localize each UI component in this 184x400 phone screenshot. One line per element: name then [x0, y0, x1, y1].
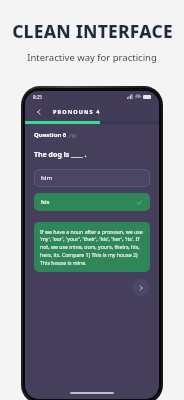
staticText: If we have a noun after a pronoun, we us…: [40, 228, 144, 266]
staticText: his: [41, 198, 50, 206]
staticText: The dog is ____ .: [34, 150, 87, 160]
staticText: CLEAN INTERFACE: [12, 19, 173, 43]
button[interactable]: If we have a noun after a pronoun, we us…: [34, 222, 150, 272]
staticText: PRONOUNS 4: [53, 108, 101, 115]
staticText: /10: [69, 133, 76, 139]
staticText: 8:25: [33, 94, 42, 100]
staticText: him: [41, 174, 53, 182]
button[interactable]: Next question: [132, 279, 149, 296]
staticText: Interactive way for practicing: [27, 51, 157, 64]
button[interactable]: Back: [32, 105, 46, 119]
staticText: Question 6: [34, 131, 67, 139]
button[interactable]: his: [34, 193, 150, 211]
button[interactable]: him: [34, 169, 150, 187]
